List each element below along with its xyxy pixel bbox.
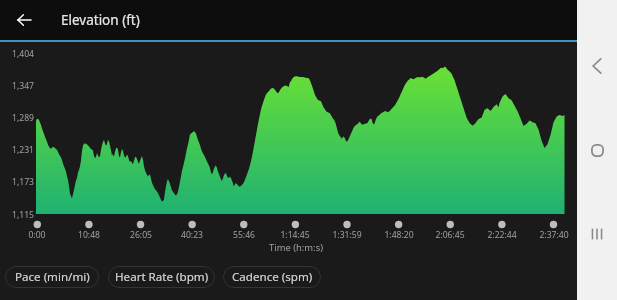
staticText: 1:48:20 [367, 229, 431, 241]
staticText: 10:48 [57, 229, 121, 241]
staticText: 1,347 [12, 80, 34, 92]
staticText: 1,289 [12, 112, 34, 124]
button[interactable]: Heart Rate (bpm) [108, 266, 215, 288]
staticText: Time (h:m:s) [236, 241, 356, 254]
staticText: 40:23 [160, 229, 224, 241]
button[interactable]: Pace (min/mi) [5, 266, 99, 288]
staticText: 1:31:59 [315, 229, 379, 241]
button[interactable]: Back [577, 46, 617, 86]
staticText: 2:37:40 [522, 229, 586, 241]
staticText: Heart Rate (bpm) [115, 269, 209, 285]
staticText: Pace (min/mi) [15, 269, 90, 285]
staticText: 26:05 [109, 229, 173, 241]
button[interactable]: Home [577, 130, 617, 170]
staticText: 0:00 [5, 229, 69, 241]
staticText: Cadence (spm) [232, 269, 313, 285]
staticText: Elevation (ft) [61, 11, 140, 29]
staticText: 1,404 [12, 48, 34, 60]
button[interactable]: Recent apps [577, 214, 617, 254]
staticText: 2:22:44 [470, 229, 534, 241]
staticText: 1,231 [12, 144, 34, 156]
staticText: 1,173 [12, 176, 34, 188]
staticText: 1:14:45 [263, 229, 327, 241]
button[interactable]: Navigate up [2, 0, 46, 40]
staticText: 2:06:45 [418, 229, 482, 241]
staticText: 1,115 [12, 209, 34, 221]
staticText: 55:46 [212, 229, 276, 241]
button[interactable]: Cadence (spm) [223, 266, 321, 288]
